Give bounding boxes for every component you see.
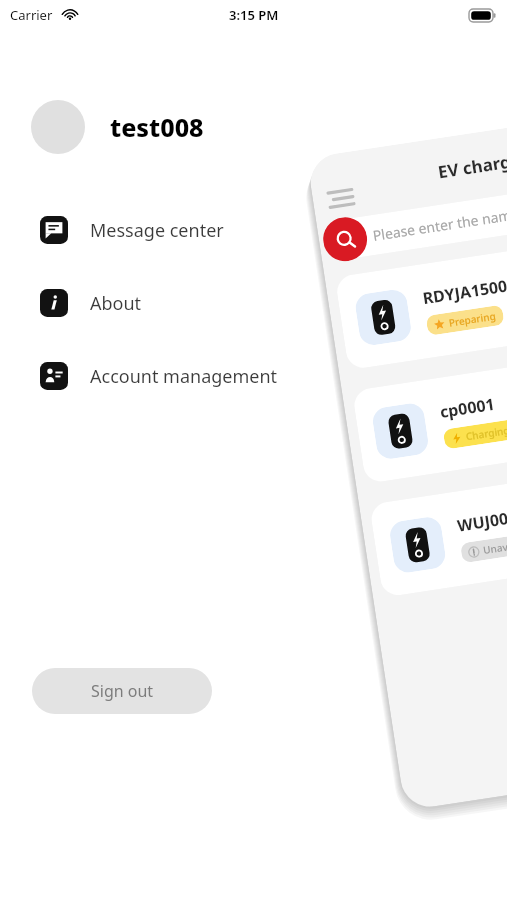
staticText: Please enter the name: [371, 204, 507, 245]
button[interactable]: Message center: [0, 216, 507, 244]
staticText: Carrier: [10, 6, 53, 24]
staticText: Unavailable: [482, 535, 507, 557]
staticText: Charging: [465, 423, 507, 443]
other: Battery: [469, 9, 495, 22]
button[interactable]: Search: [320, 214, 370, 264]
staticText: 3:15 PM: [229, 6, 279, 24]
button[interactable]: Menu: [328, 188, 354, 209]
staticText: Preparing: [448, 309, 497, 330]
staticText: Account management: [90, 364, 278, 389]
button[interactable]: Sign out: [32, 668, 212, 714]
other: Wi-Fi: [62, 6, 78, 22]
staticText: About: [90, 291, 142, 316]
staticText: WUJ00001: [456, 503, 507, 537]
button[interactable]: About: [0, 289, 507, 317]
staticText: Sign out: [91, 680, 154, 702]
staticText: EV charger: [436, 147, 507, 183]
staticText: Message center: [90, 218, 224, 243]
button[interactable]: Please enter the name: [324, 186, 507, 262]
button[interactable]: test008: [31, 100, 204, 154]
button[interactable]: Account management: [0, 362, 507, 390]
button[interactable]: cp0001: [352, 355, 507, 484]
staticText: cp0001: [438, 393, 496, 423]
button[interactable]: WUJ00001: [369, 469, 507, 598]
staticText: test008: [110, 110, 204, 144]
button[interactable]: RDYJA15001: [335, 242, 507, 370]
staticText: RDYJA15001: [421, 273, 507, 309]
